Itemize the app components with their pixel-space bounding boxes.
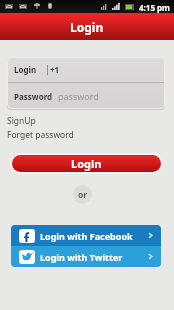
staticText: Login [14,64,37,75]
staticText: Login with Facebook [40,230,133,242]
button[interactable]: Password [7,83,165,109]
staticText: Login [71,156,102,171]
button[interactable]: Forget password [7,129,74,141]
staticText: or [78,189,88,201]
staticText: Login with Twitter [40,251,123,263]
button[interactable]: Login [12,155,161,172]
button[interactable]: SignUp [7,115,36,127]
staticText: 4:15 pm [139,2,170,13]
button[interactable]: or [73,185,92,204]
staticText: +1 [50,64,60,75]
button[interactable]: Login with Facebook [11,225,161,246]
staticText: Login [70,19,104,35]
staticText: Password [14,91,53,102]
button[interactable]: Login with Twitter [11,246,161,267]
button[interactable]: Login [7,57,165,82]
staticText: password [58,90,99,102]
